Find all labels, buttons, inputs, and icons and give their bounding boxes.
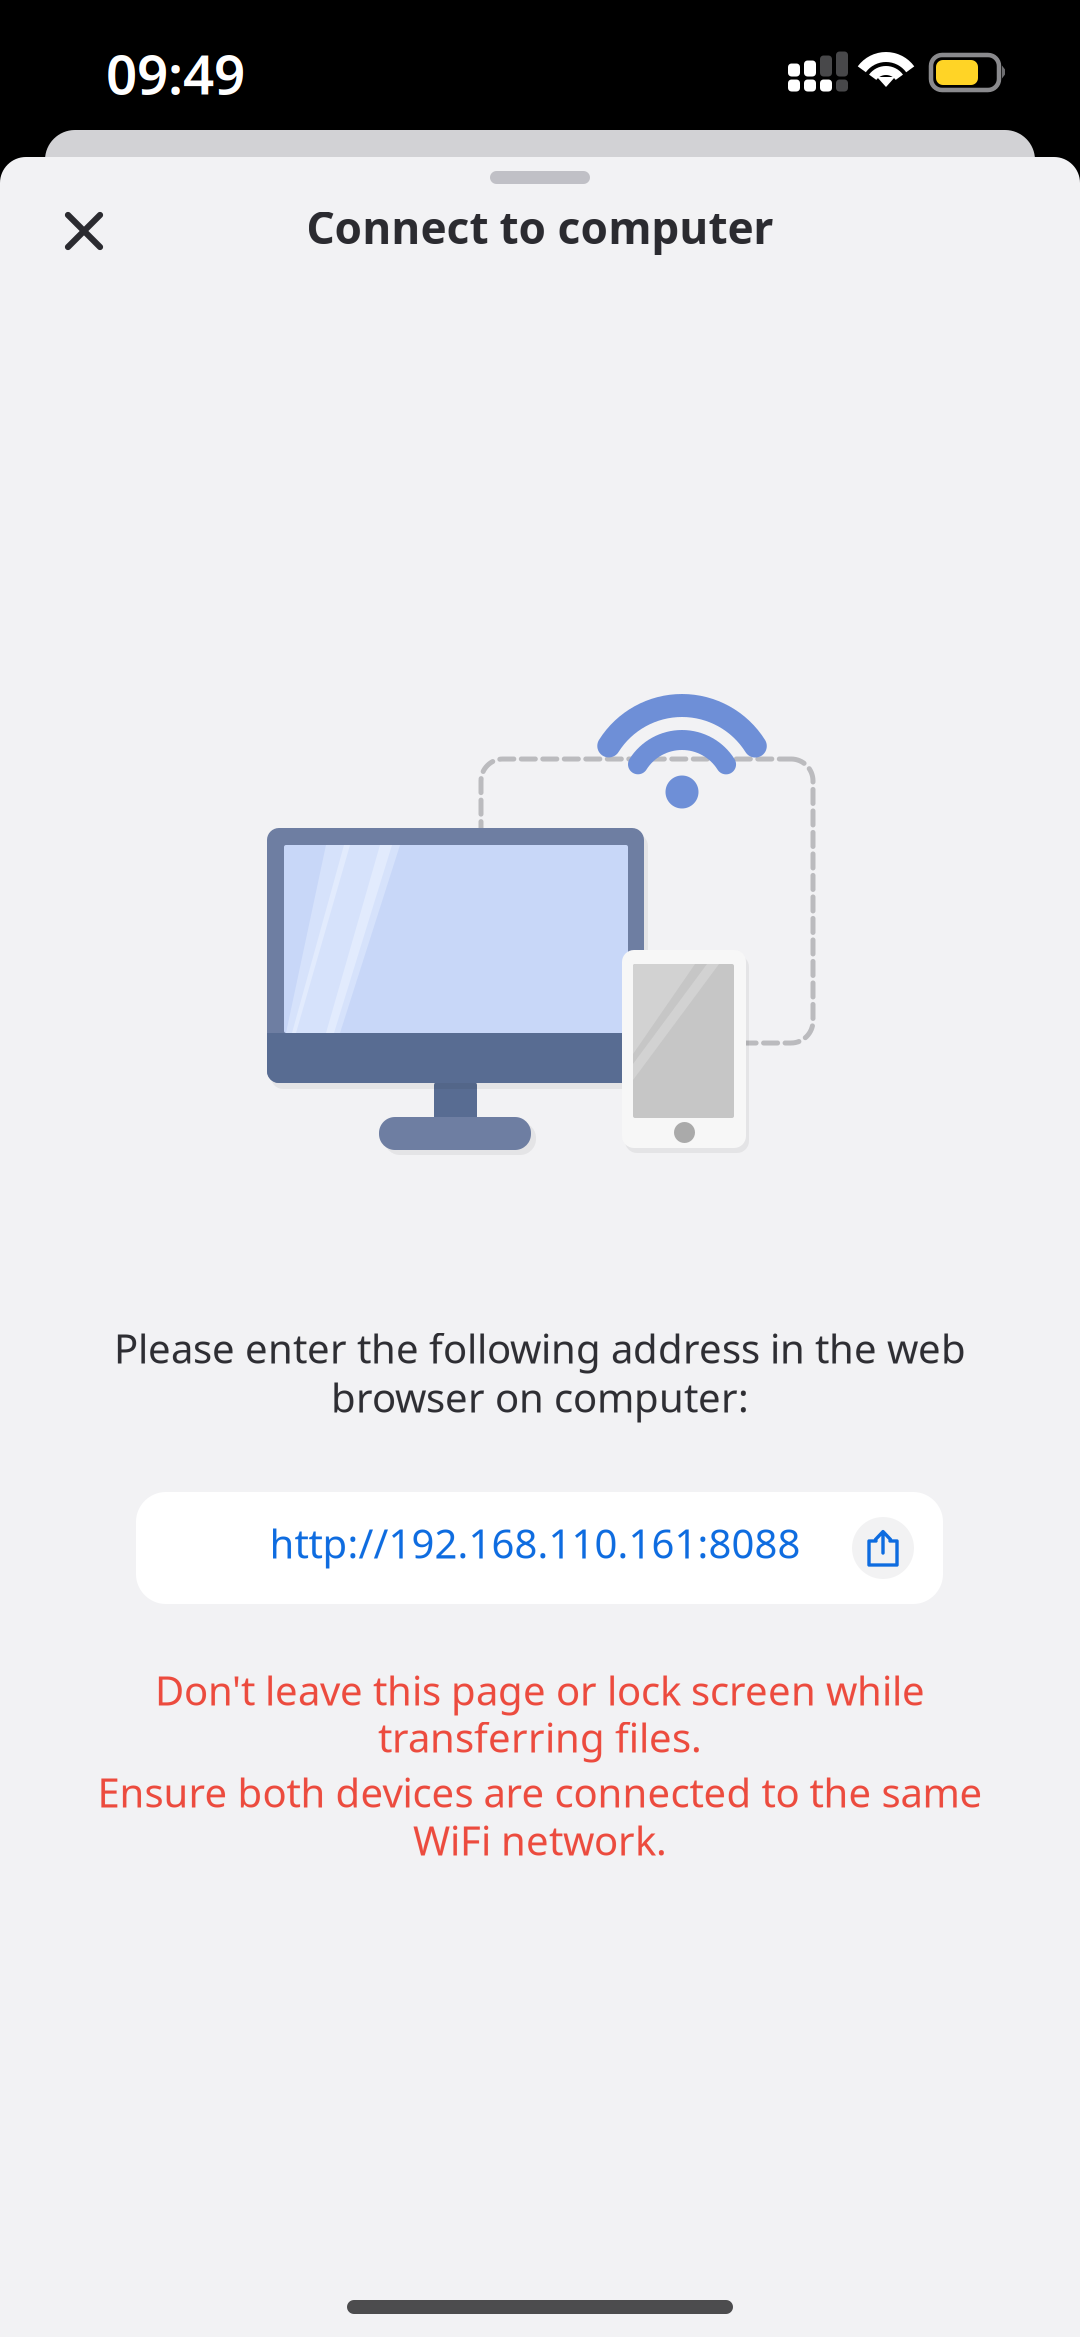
button[interactable]: http://192.168.110.161:8088 <box>136 1492 943 1604</box>
staticText: Connect to computer <box>306 198 773 256</box>
button[interactable]: Close <box>36 183 132 279</box>
staticText: Ensure both devices are connected to the… <box>97 1765 982 1818</box>
staticText: WiFi network. <box>413 1813 667 1866</box>
staticText: 09:49 <box>106 37 245 110</box>
staticText: Please enter the following address in th… <box>114 1321 966 1374</box>
staticText: http://192.168.110.161:8088 <box>269 1516 800 1569</box>
staticText: transferring files. <box>378 1710 702 1763</box>
staticText: Don't leave this page or lock screen whi… <box>155 1663 925 1716</box>
staticText: browser on computer: <box>331 1370 749 1423</box>
